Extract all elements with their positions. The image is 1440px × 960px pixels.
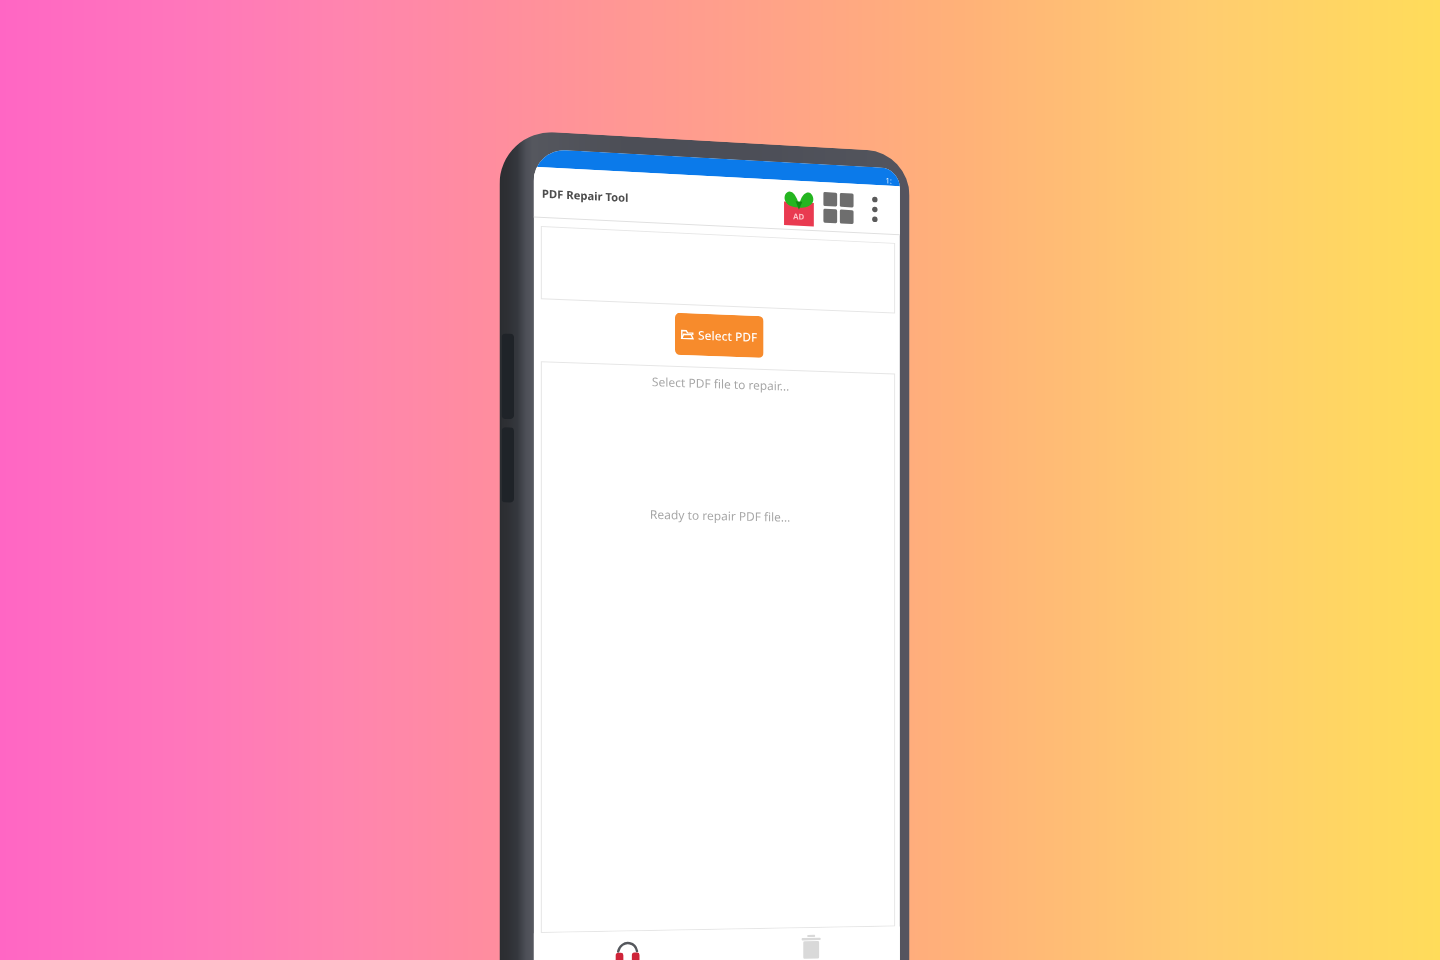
- button[interactable]: Headphones: [534, 930, 720, 960]
- staticText: AD: [793, 210, 805, 222]
- button[interactable]: More apps: [818, 187, 857, 228]
- button[interactable]: Select PDF: [675, 313, 764, 358]
- staticText: Select PDF: [698, 327, 758, 345]
- staticText: Select PDF file to repair...: [652, 373, 790, 394]
- button[interactable]: Delete: [720, 926, 900, 960]
- staticText: 1:: [885, 175, 892, 186]
- staticText: PDF Repair Tool: [542, 185, 629, 205]
- button[interactable]: Gift Ad: [777, 185, 817, 226]
- staticText: Ready to repair PDF file...: [650, 506, 791, 525]
- button[interactable]: More options: [857, 191, 892, 228]
